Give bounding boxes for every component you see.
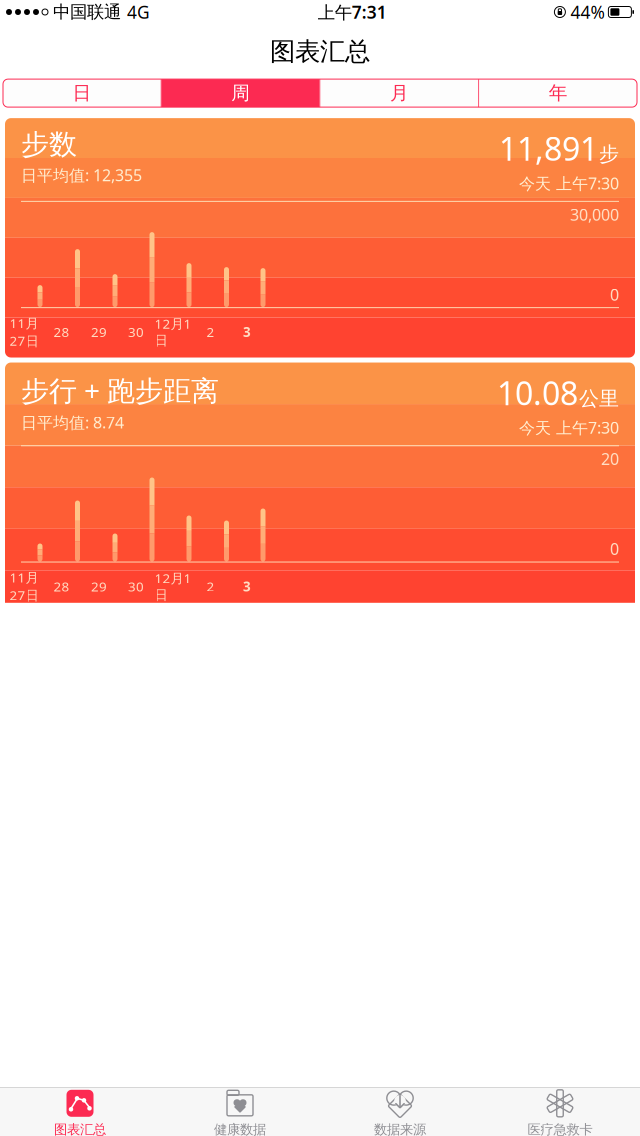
staticText: 日平均值: 8.74 [21,412,124,433]
staticText: 12月1日 [154,569,191,603]
staticText: 30,000 [570,204,619,225]
button[interactable]: 数据来源 [320,1083,480,1136]
button[interactable]: 医疗急救卡 [480,1083,640,1136]
button[interactable]: 年 [479,79,637,107]
staticText: 日平均值: 12,355 [21,164,142,186]
staticText: 28 [53,323,69,341]
staticText: 医疗急救卡 [527,1121,592,1136]
staticText: 中国联通 [53,1,121,23]
staticText: 步 [599,142,619,166]
button[interactable]: 步数 [5,118,635,357]
staticText: 周 [231,82,250,105]
staticText: 0 [610,538,619,559]
staticText: 28 [53,577,69,595]
staticText: 上午7:31 [318,0,387,23]
staticText: 步行 + 跑步距离 [21,371,219,409]
staticText: 今天 上午7:30 [519,173,619,194]
staticText: 图表汇总 [270,36,370,67]
staticText: 4G [127,0,150,23]
staticText: 29 [91,577,107,595]
button[interactable]: 月 [320,79,478,107]
staticText: 年 [549,82,568,105]
staticText: 20 [601,448,619,469]
staticText: 30 [128,323,144,341]
staticText: 30 [128,577,144,595]
staticText: 健康数据 [214,1121,266,1136]
staticText: 44% [570,0,604,23]
staticText: 2 [206,323,214,341]
staticText: 29 [91,323,107,341]
staticText: 3 [243,577,251,595]
button[interactable]: 图表汇总 [0,1083,160,1136]
staticText: 2 [206,577,214,595]
staticText: 今天 上午7:30 [519,417,619,438]
staticText: 0 [610,284,619,305]
staticText: 3 [243,323,251,341]
staticText: 数据来源 [374,1121,426,1136]
staticText: 图表汇总 [54,1121,106,1136]
button[interactable]: 健康数据 [160,1083,320,1136]
button[interactable]: 步行 + 跑步距离 [5,362,635,612]
staticText: 日 [72,82,91,105]
staticText: 10.08 [497,371,578,414]
staticText: 11月27日 [9,314,38,349]
staticText: 11,891 [499,127,598,170]
staticText: 11月27日 [9,568,38,604]
button[interactable]: 日 [3,79,161,107]
staticText: 公里 [579,386,619,411]
button[interactable]: 周 [162,79,320,107]
staticText: 月 [390,82,409,105]
staticText: 12月1日 [154,315,191,349]
staticText: 步数 [21,127,77,161]
